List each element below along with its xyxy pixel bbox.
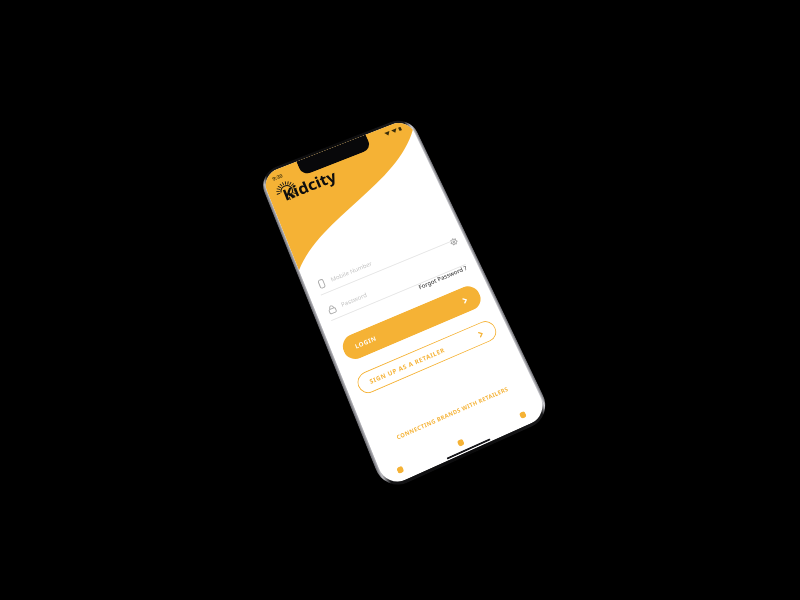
button[interactable]: SIGN UP AS A RETAILER (354, 318, 500, 397)
button[interactable]: Settings (449, 237, 459, 247)
button[interactable]: Forgot Password ? (417, 264, 469, 291)
staticText: SIGN UP AS A RETAILER (368, 346, 446, 386)
staticText: Mobile Number (329, 259, 374, 284)
staticText: CONNECTING BRANDS WITH RETAILERS (395, 384, 509, 441)
staticText: 9:30 (271, 172, 283, 182)
staticText: Kidcity (279, 165, 340, 205)
staticText: LOGIN (354, 334, 379, 351)
button[interactable]: LOGIN (339, 282, 485, 363)
staticText: Password (340, 291, 369, 309)
